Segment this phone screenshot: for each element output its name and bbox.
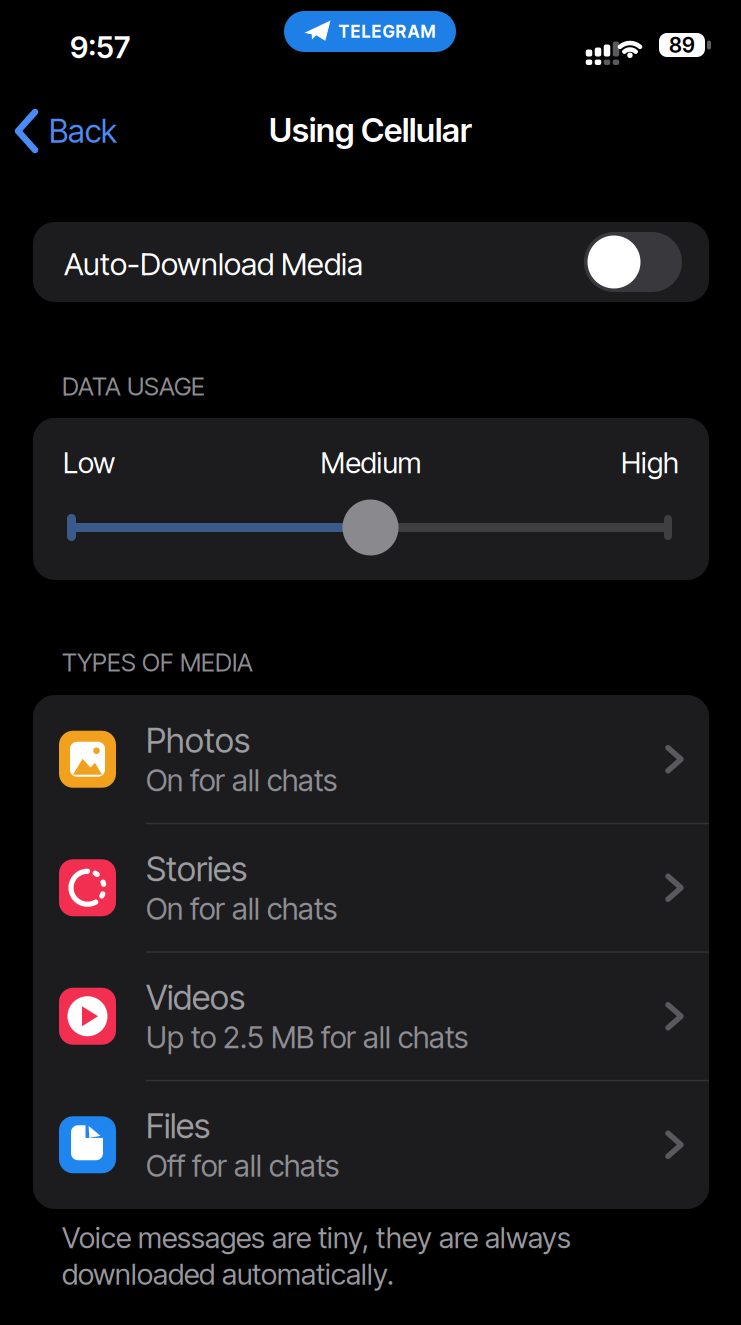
button[interactable]: Return to Telegram <box>284 11 456 52</box>
staticText: T E L E G R A M <box>338 22 435 41</box>
staticText: 89 <box>669 33 695 57</box>
staticText: Photos <box>146 721 250 760</box>
staticText: Videos <box>146 978 245 1017</box>
staticText: Up to 2.5 MB for all chats <box>146 1020 468 1055</box>
button[interactable]: Files <box>33 1080 709 1209</box>
staticText: On for all chats <box>146 892 337 926</box>
staticText: Off for all chats <box>146 1149 339 1183</box>
staticText: Files <box>146 1106 210 1146</box>
staticText: TYPES OF MEDIA <box>62 648 253 677</box>
button[interactable]: Data usage amount <box>66 497 706 557</box>
staticText: Back <box>49 113 117 149</box>
staticText: 9:57 <box>70 30 130 65</box>
staticText: Low <box>63 446 115 479</box>
staticText: Stories <box>146 849 247 889</box>
staticText: Medium <box>320 446 421 479</box>
button[interactable]: Photos <box>33 695 709 823</box>
staticText: Voice messages are tiny, they are always… <box>62 1221 571 1291</box>
button[interactable]: Back <box>18 109 117 153</box>
button[interactable]: Videos <box>33 952 709 1080</box>
staticText: High <box>621 446 679 479</box>
staticText: Using Cellular <box>269 111 472 149</box>
staticText: DATA USAGE <box>62 372 205 401</box>
button[interactable]: Stories <box>33 823 709 952</box>
button[interactable]: Auto-Download Media <box>33 222 709 302</box>
staticText: On for all chats <box>146 763 337 798</box>
staticText: Auto-Download Media <box>64 246 363 282</box>
